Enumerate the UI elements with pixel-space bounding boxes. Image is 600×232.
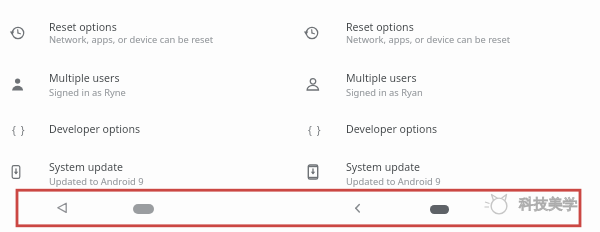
button[interactable] <box>347 195 367 221</box>
button[interactable] <box>293 156 600 190</box>
staticText: 科技美学 <box>519 195 577 213</box>
staticText: Developer options <box>49 122 141 136</box>
button[interactable] <box>0 66 293 102</box>
staticText: System update <box>49 160 124 174</box>
staticText: { } <box>12 123 26 137</box>
staticText: Reset options <box>346 20 414 34</box>
staticText: Developer options <box>346 122 438 136</box>
staticText: Updated to Android 9 <box>49 175 144 188</box>
staticText: Multiple users <box>49 71 120 85</box>
staticText: Signed in as Ryne <box>49 86 126 99</box>
staticText: Network, apps, or device can be reset <box>49 33 214 46</box>
staticText: 科技美学 <box>519 195 577 213</box>
staticText: { } <box>308 123 322 137</box>
staticText: Signed in as Ryan <box>346 86 423 99</box>
staticText: Network, apps, or device can be reset <box>346 33 511 46</box>
staticText: Reset options <box>49 20 117 34</box>
button[interactable] <box>0 16 293 52</box>
button[interactable] <box>0 117 293 141</box>
button[interactable] <box>293 66 600 102</box>
staticText: System update <box>346 160 421 174</box>
button[interactable] <box>293 117 600 141</box>
button[interactable] <box>0 156 293 190</box>
button[interactable] <box>48 195 76 223</box>
button[interactable] <box>293 16 600 52</box>
staticText: Updated to Android 9 <box>346 175 441 188</box>
button[interactable] <box>133 204 154 214</box>
button[interactable] <box>430 205 449 214</box>
staticText: Multiple users <box>346 71 417 85</box>
